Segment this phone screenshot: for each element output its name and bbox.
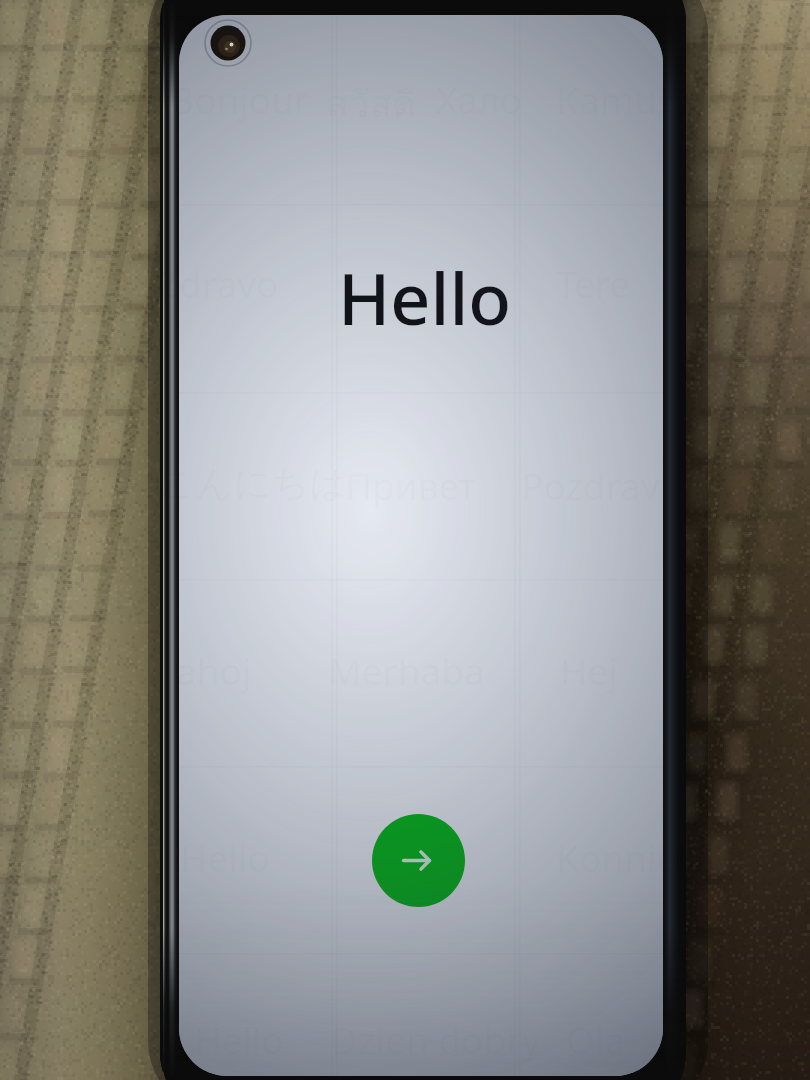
staticText: Hello	[338, 250, 512, 345]
staticText: Merhaba	[328, 645, 485, 695]
staticText: こんにちは	[158, 460, 348, 507]
staticText: Привет	[345, 460, 476, 510]
staticText: ahoj	[176, 645, 252, 695]
staticText: Hej	[560, 645, 618, 695]
staticText: Hello	[180, 832, 270, 882]
staticText: Tere	[556, 258, 631, 308]
staticText: Dzien dobry	[331, 1014, 541, 1064]
staticText: Bonjour	[170, 74, 310, 124]
staticText: สวัสดี	[326, 74, 416, 133]
staticText: Hello	[194, 1014, 284, 1064]
staticText: Pozdrav	[521, 460, 660, 510]
staticText: Хало	[436, 74, 522, 124]
staticText: Konnichi	[556, 832, 707, 882]
staticText: Ola	[566, 1014, 626, 1064]
staticText: Kamusta	[556, 74, 709, 124]
button[interactable]: Next	[372, 814, 465, 907]
staticText: Zdravo	[158, 258, 279, 308]
